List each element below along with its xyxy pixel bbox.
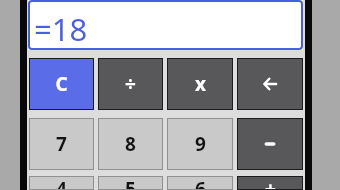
button[interactable]: x [167,58,233,110]
button[interactable]: Minus [237,118,303,170]
button[interactable]: 4 [29,176,94,190]
staticText: C [55,71,68,97]
staticText: =18 [34,8,88,50]
staticText: 5 [125,176,136,190]
staticText: 8 [125,131,136,157]
button[interactable]: 6 [167,176,233,190]
button[interactable]: 9 [167,118,233,170]
button[interactable]: C [29,58,94,110]
staticText: + [265,176,276,190]
staticText: 6 [195,176,206,190]
button[interactable]: + [237,176,303,190]
button[interactable]: =18 [28,0,303,50]
staticText: ÷ [125,71,136,97]
staticText: 4 [56,176,67,190]
staticText: 9 [195,131,206,157]
staticText: 7 [56,131,67,157]
button[interactable]: 5 [98,176,163,190]
button[interactable]: Backspace [237,58,303,110]
button[interactable]: 8 [98,118,163,170]
staticText: x [195,71,206,97]
button[interactable]: ÷ [98,58,163,110]
button[interactable]: 7 [29,118,94,170]
